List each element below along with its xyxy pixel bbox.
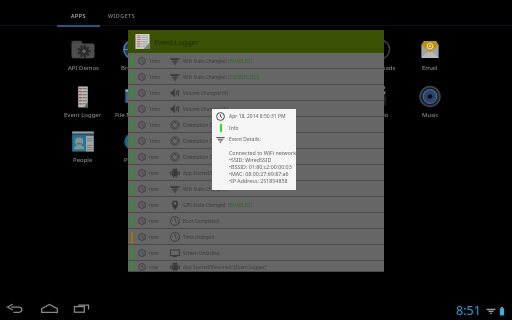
staticText: [CONNECTED] — [227, 74, 260, 80]
button[interactable]: Audio — [356, 86, 404, 115]
staticText: Connected to WiFi network. — [229, 149, 298, 156]
staticText: now — [149, 186, 159, 192]
button[interactable]: Status bar — [456, 302, 505, 319]
staticText: •MAC: 08:00:27:69:87:a6 — [229, 170, 289, 177]
button[interactable]: WIDGETS — [100, 4, 144, 26]
button[interactable]: People — [59, 131, 107, 160]
staticText: App Started/Resumed: [Event Logger] — [183, 264, 267, 270]
staticText: now — [149, 202, 159, 208]
staticText: WIDGETS — [108, 12, 136, 19]
staticText: [ENABLED] — [227, 58, 252, 64]
staticText: Boot Completed — [183, 218, 219, 224]
staticText: •IP Address: 251854858 — [229, 177, 288, 184]
staticText: 1min — [149, 138, 161, 144]
staticText: File Manager — [115, 111, 152, 119]
staticText: Orientation Changed — [183, 122, 230, 128]
staticText: Screen Unlocked — [183, 250, 220, 256]
button[interactable]: now — [128, 261, 384, 272]
button[interactable]: 1min — [128, 117, 384, 133]
staticText: 8:51 — [456, 302, 481, 319]
staticText: Phone — [124, 156, 143, 164]
button[interactable]: API Demos — [59, 39, 107, 68]
button[interactable]: Downloads — [356, 39, 404, 68]
staticText: 1min — [149, 58, 161, 64]
button[interactable]: 1min — [128, 85, 384, 101]
button[interactable]: now — [128, 197, 384, 213]
staticText: Email — [422, 64, 438, 72]
staticText: Apr 18, 2014 8:50:31 PM — [229, 113, 286, 120]
button[interactable]: Email — [406, 39, 454, 68]
staticText: Volume Changed [5] — [183, 106, 228, 112]
staticText: Audio — [372, 111, 389, 119]
staticText: 1min — [149, 122, 161, 128]
staticText: APPS — [71, 12, 86, 19]
staticText: •SSID: WiredSSID — [229, 156, 272, 163]
staticText: Time changed — [183, 234, 215, 240]
staticText: 1min — [149, 74, 161, 80]
staticText: GPS State Changed: — [183, 202, 227, 208]
staticText: API Demos — [68, 64, 99, 72]
staticText: Music — [422, 111, 439, 119]
staticText: Volume Changed [4] — [183, 90, 228, 96]
button[interactable]: 1min — [128, 53, 384, 69]
button[interactable]: now — [128, 165, 384, 181]
staticText: Orientation Changed — [183, 138, 230, 144]
button[interactable]: Recent apps — [68, 298, 94, 318]
staticText: now — [149, 234, 159, 240]
staticText: now — [149, 250, 159, 256]
staticText: now — [149, 154, 159, 160]
button[interactable]: now — [128, 229, 384, 245]
button[interactable]: Home — [36, 298, 62, 318]
button[interactable]: 1min — [128, 69, 384, 85]
staticText: 1min — [149, 106, 161, 112]
staticText: WiFi State Changed: — [183, 186, 227, 192]
button[interactable]: Phone — [109, 131, 157, 160]
button[interactable]: 1min — [128, 133, 384, 149]
staticText: App Started/Resumed — [183, 170, 232, 176]
staticText: Downloads — [364, 64, 396, 72]
button[interactable]: File Manager — [109, 86, 157, 115]
staticText: now — [149, 264, 159, 270]
button[interactable]: now — [128, 245, 384, 261]
button[interactable]: Browser — [109, 39, 157, 68]
button[interactable]: now — [128, 149, 384, 165]
button[interactable]: now — [128, 213, 384, 229]
staticText: Browser — [121, 64, 145, 72]
staticText: Event Logger — [154, 37, 199, 47]
staticText: WiFi State Changed: — [183, 58, 227, 64]
button[interactable]: Event Logger — [128, 30, 384, 53]
button[interactable]: Music — [406, 86, 454, 115]
staticText: People — [73, 156, 93, 164]
button[interactable]: APPS — [57, 4, 100, 26]
staticText: Event Logger — [64, 111, 102, 119]
staticText: 1min — [149, 90, 161, 96]
staticText: WiFi State Changed: — [183, 74, 227, 80]
button[interactable]: Event Logger — [59, 86, 107, 115]
button[interactable]: now — [128, 181, 384, 197]
button[interactable]: 1min — [128, 101, 384, 117]
staticText: Event Details: — [229, 136, 261, 143]
button[interactable]: Back — [2, 298, 28, 318]
staticText: Orientation Changed — [183, 154, 230, 160]
staticText: Info — [229, 125, 239, 132]
staticText: now — [149, 218, 159, 224]
staticText: •BSSID: 01:80:c2:00:00:03 — [229, 163, 292, 170]
staticText: now — [149, 170, 159, 176]
staticText: [ENABLED] — [227, 202, 252, 208]
